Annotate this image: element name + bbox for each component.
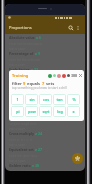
staticText: log bbox=[57, 109, 63, 114]
staticText: pi bbox=[16, 109, 20, 114]
staticText: Scale factor bbox=[9, 67, 30, 72]
button[interactable]: Cross multiply bbox=[5, 130, 85, 146]
staticText: sin bbox=[29, 97, 35, 102]
staticText: cos bbox=[43, 97, 49, 102]
staticText: 388 bbox=[71, 73, 78, 78]
staticText: tap to open bbox=[9, 111, 26, 114]
button[interactable]: log bbox=[53, 106, 66, 117]
staticText: Training bbox=[12, 73, 29, 78]
button[interactable]: 1 bbox=[11, 94, 24, 105]
staticText: 7 bbox=[42, 81, 46, 86]
button[interactable]: Absolute value bbox=[5, 34, 85, 50]
staticText: Unit rate bbox=[9, 115, 25, 120]
button[interactable]: Add bbox=[72, 153, 83, 164]
button[interactable]: Percentage of bbox=[5, 50, 85, 66]
staticText: tap to open bbox=[9, 95, 26, 98]
button[interactable]: % bbox=[67, 94, 80, 105]
button[interactable]: More options bbox=[75, 25, 81, 31]
button[interactable]: pow bbox=[25, 106, 38, 117]
button[interactable]: Golden ratio bbox=[5, 162, 85, 171]
staticText: x 9 bbox=[35, 51, 40, 56]
button[interactable]: Unit rate bbox=[5, 114, 85, 130]
button[interactable]: Direct ratio bbox=[5, 82, 85, 98]
staticText: x 24 bbox=[35, 131, 42, 136]
staticText: x bbox=[72, 109, 75, 114]
button[interactable]: x bbox=[67, 106, 80, 117]
staticText: Equivalent set bbox=[9, 147, 34, 152]
staticText: x 15 bbox=[30, 83, 37, 88]
button[interactable]: Search bbox=[68, 25, 74, 31]
staticText: Direct ratio bbox=[9, 83, 29, 88]
staticText: Golden ratio bbox=[9, 163, 31, 168]
staticText: tap something you know to start a drill bbox=[12, 86, 67, 90]
button[interactable]: Scale factor bbox=[5, 66, 85, 82]
staticText: tan bbox=[56, 97, 63, 102]
button[interactable]: cos bbox=[39, 94, 52, 105]
staticText: x 6 bbox=[36, 35, 41, 40]
staticText: 1 bbox=[16, 97, 19, 102]
staticText: equals bbox=[27, 81, 42, 86]
button[interactable]: pi bbox=[11, 106, 24, 117]
button[interactable]: Close bbox=[78, 73, 83, 78]
staticText: products stay constant bbox=[9, 106, 42, 110]
staticText: scale any measurement bbox=[9, 74, 43, 78]
staticText: x 30 bbox=[32, 163, 39, 168]
staticText: x 12 bbox=[31, 67, 38, 72]
staticText: sets bbox=[46, 81, 55, 86]
staticText: Cross multiply bbox=[9, 131, 34, 136]
staticText: Absolute value bbox=[9, 35, 35, 40]
staticText: Inverse ratio bbox=[9, 99, 32, 104]
button[interactable]: sin bbox=[25, 94, 38, 105]
staticText: Proportions bbox=[9, 25, 32, 30]
staticText: pow bbox=[28, 109, 36, 114]
staticText: x 21 bbox=[26, 115, 33, 120]
staticText: Percentage of bbox=[9, 51, 34, 56]
button[interactable]: tan bbox=[53, 94, 66, 105]
staticText: x 27 bbox=[35, 147, 42, 152]
staticText: filter bbox=[12, 81, 23, 86]
button[interactable]: Inverse ratio bbox=[5, 98, 85, 114]
staticText: x 18 bbox=[33, 99, 40, 104]
staticText: 9 bbox=[23, 81, 27, 86]
staticText: % bbox=[72, 97, 76, 102]
button[interactable]: Equivalent set bbox=[5, 146, 85, 162]
button[interactable]: sqrt bbox=[39, 106, 52, 117]
staticText: sqrt bbox=[42, 109, 50, 114]
